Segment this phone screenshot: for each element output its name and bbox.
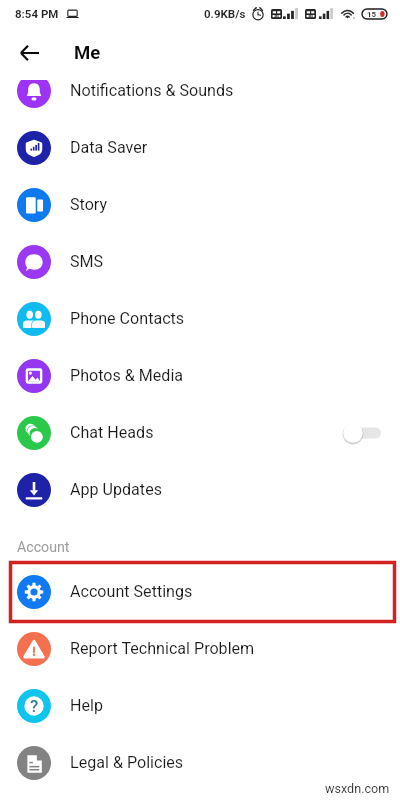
button[interactable]: Account Settings	[0, 563, 400, 620]
staticText: Data Saver	[70, 138, 148, 157]
button[interactable]: Chat Heads	[0, 404, 400, 461]
button[interactable]: ?	[0, 677, 400, 734]
staticText: Phone Contacts	[70, 309, 185, 328]
button[interactable]: Notifications & Sounds	[0, 80, 400, 119]
staticText: Account	[17, 539, 70, 556]
staticText: Legal & Policies	[70, 753, 184, 772]
staticText: Help	[70, 696, 103, 715]
staticText: Account Settings	[70, 582, 193, 601]
staticText: Chat Heads	[70, 423, 154, 442]
button[interactable]: Back	[11, 35, 47, 71]
button[interactable]: Phone Contacts	[0, 290, 400, 347]
button[interactable]: App Updates	[0, 461, 400, 518]
button[interactable]: Data Saver	[0, 119, 400, 176]
staticText: 15	[367, 10, 377, 19]
staticText: ?	[30, 696, 39, 716]
staticText: Photos & Media	[70, 366, 184, 385]
staticText: wsxdn.com	[325, 781, 390, 796]
button[interactable]: Photos & Media	[0, 347, 400, 404]
button[interactable]: Legal & Policies	[0, 734, 400, 791]
button[interactable]: SMS	[0, 233, 400, 290]
staticText: App Updates	[70, 480, 162, 499]
staticText: 0.9KB/s	[204, 7, 246, 20]
staticText: Me	[74, 42, 101, 64]
staticText: Report Technical Problem	[70, 639, 255, 658]
button[interactable]: Report Technical Problem	[0, 620, 400, 677]
staticText: SMS	[70, 252, 104, 271]
button[interactable]: Story	[0, 176, 400, 233]
staticText: 8:54 PM	[15, 7, 59, 20]
staticText: Story	[70, 195, 108, 214]
staticText: Notifications & Sounds	[70, 81, 234, 100]
